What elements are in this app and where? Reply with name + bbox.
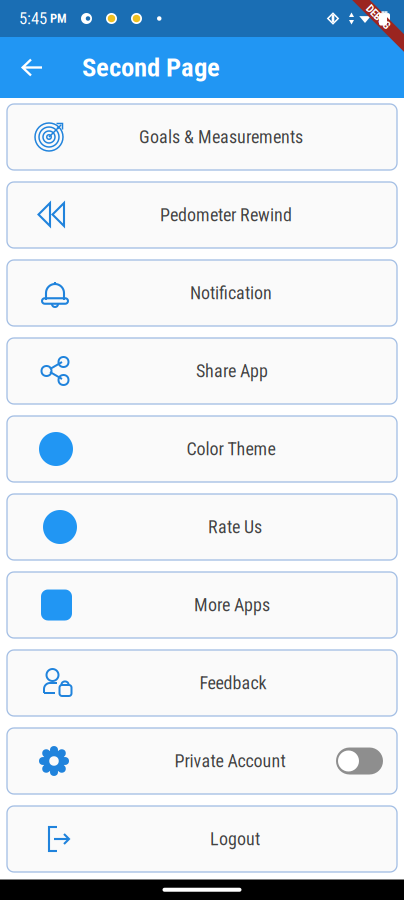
staticText: Rate Us	[208, 516, 262, 538]
button[interactable]: Logout	[7, 806, 397, 872]
button[interactable]: More Apps	[7, 572, 397, 638]
staticText: PM	[47, 11, 67, 26]
staticText: Feedback	[199, 672, 266, 694]
button[interactable]: Private Account	[7, 728, 397, 794]
staticText: Logout	[210, 828, 260, 850]
staticText: Private Account	[174, 750, 285, 772]
button[interactable]: Color Theme	[7, 416, 397, 482]
staticText: DEBUG	[363, 11, 392, 23]
staticText: 5:45	[19, 9, 47, 28]
button[interactable]: Feedback	[7, 650, 397, 716]
button[interactable]: Notification	[7, 260, 397, 326]
button[interactable]: Pedometer Rewind	[7, 182, 397, 248]
button[interactable]: Goals & Measurements	[7, 104, 397, 170]
button[interactable]: Rate Us	[7, 494, 397, 560]
staticText: More Apps	[194, 594, 270, 616]
staticText: Notification	[190, 282, 272, 304]
staticText: Goals & Measurements	[139, 126, 303, 148]
button[interactable]: Back	[0, 46, 82, 88]
button[interactable]: Share App	[7, 338, 397, 404]
staticText: Pedometer Rewind	[160, 204, 292, 226]
staticText: Second Page	[82, 52, 220, 83]
staticText: Color Theme	[186, 438, 275, 460]
staticText: Share App	[196, 360, 268, 382]
